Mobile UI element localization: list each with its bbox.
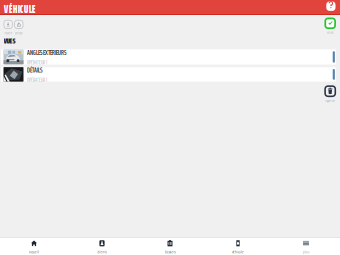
button[interactable]: ANGLES EXTÉRIEURS bbox=[1, 49, 336, 64]
button[interactable]: DÉTAILS bbox=[1, 67, 336, 82]
button[interactable]: plus bbox=[272, 241, 340, 254]
staticText: VÉHICULE bbox=[4, 1, 36, 18]
button[interactable]: dossiers bbox=[136, 241, 204, 254]
staticText: clients bbox=[97, 248, 106, 255]
staticText: VUES bbox=[4, 34, 16, 47]
staticText: véhicule bbox=[232, 248, 244, 255]
staticText: dossiers bbox=[164, 248, 175, 255]
button[interactable]: véhicule bbox=[204, 241, 272, 254]
staticText: partager bbox=[15, 30, 23, 36]
button[interactable]: accueil bbox=[0, 241, 68, 254]
staticText: DÉTAILS bbox=[27, 65, 42, 75]
staticText: importer bbox=[4, 30, 13, 36]
button[interactable]: supprimer bbox=[325, 86, 335, 104]
staticText: supprimer bbox=[325, 98, 335, 104]
staticText: ANGLES EXTÉRIEURS bbox=[27, 47, 66, 58]
staticText: valider bbox=[327, 30, 334, 35]
button[interactable]: importer bbox=[4, 20, 13, 36]
staticText: OPÉRATEUR 1 bbox=[27, 58, 47, 66]
staticText: accueil bbox=[29, 248, 39, 255]
staticText: OPÉRATEUR 1 bbox=[27, 76, 47, 84]
staticText: plus bbox=[303, 248, 309, 255]
button[interactable]: valider bbox=[325, 18, 335, 35]
button[interactable]: clients bbox=[68, 241, 136, 254]
button[interactable]: partager bbox=[15, 20, 23, 36]
button[interactable]: Aide bbox=[326, 1, 336, 11]
